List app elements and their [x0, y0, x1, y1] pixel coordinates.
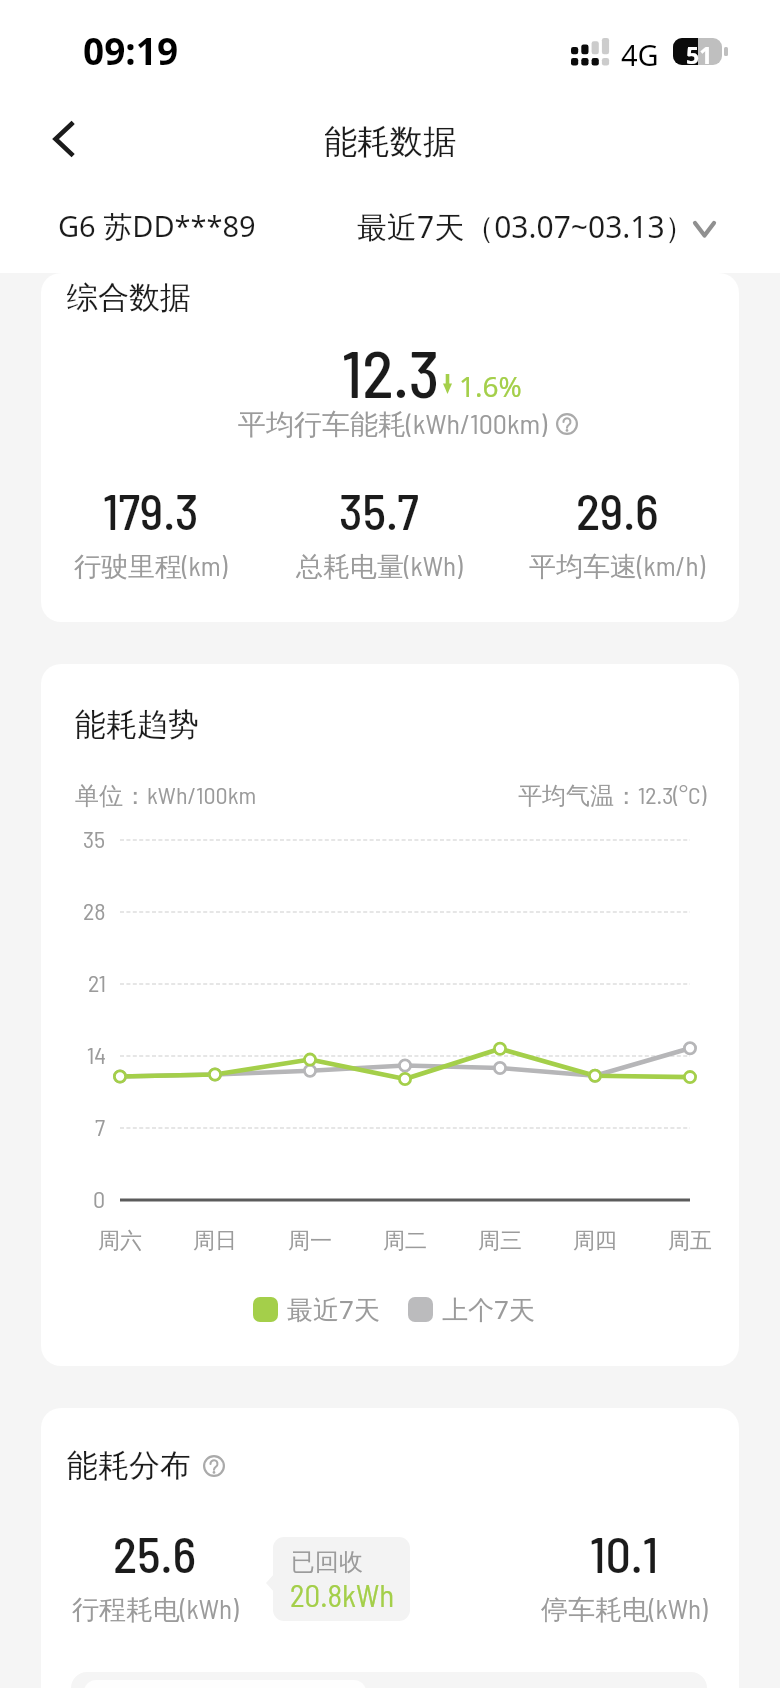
staticText: 29.6: [576, 480, 659, 540]
staticText: 4G: [621, 35, 659, 74]
staticText: 已回收: [291, 1547, 363, 1577]
staticText: 35: [83, 824, 106, 853]
staticText: 28: [83, 896, 106, 925]
staticText: 周一: [288, 1227, 332, 1255]
staticText: 能耗分布: [67, 1446, 191, 1485]
staticText: 12.3: [342, 333, 440, 411]
staticText: 平均车速(km/h): [529, 549, 706, 584]
staticText: 179.3: [103, 480, 199, 540]
button[interactable]: 25.6: [41, 1523, 275, 1627]
staticText: 10.1: [590, 1523, 659, 1583]
button[interactable]: Back: [30, 106, 96, 172]
staticText: 行程耗电(kWh): [72, 1592, 239, 1627]
button[interactable]: G6 苏DD***89: [58, 206, 256, 246]
button[interactable]: 最近7天（03.07~03.13）: [352, 194, 722, 250]
staticText: 周六: [98, 1227, 142, 1255]
button[interactable]: Help: [203, 1455, 225, 1477]
staticText: 14: [87, 1040, 106, 1069]
staticText: 25.6: [113, 1523, 197, 1583]
staticText: 总耗电量(kWh): [296, 549, 463, 584]
button[interactable]: 35.7: [259, 480, 499, 584]
staticText: 20.8kWh: [290, 1576, 395, 1613]
staticText: 单位：kWh/100km: [75, 780, 257, 811]
button[interactable]: 179.3: [41, 480, 271, 584]
staticText: 最近7天（03.07~03.13）: [357, 206, 695, 247]
staticText: 7: [95, 1112, 106, 1141]
staticText: 平均行车能耗(kWh/100km): [238, 406, 547, 442]
staticText: 平均气温：12.3(°C): [518, 780, 707, 811]
staticText: 51: [686, 39, 713, 70]
staticText: 最近7天: [287, 1291, 380, 1327]
staticText: 周二: [383, 1227, 427, 1255]
staticText: 周日: [193, 1227, 237, 1255]
staticText: 0: [93, 1184, 106, 1213]
staticText: 周三: [478, 1227, 522, 1255]
staticText: 综合数据: [67, 278, 191, 317]
button[interactable]: Help: [556, 413, 578, 435]
staticText: 停车耗电(kWh): [541, 1592, 708, 1627]
button[interactable]: 10.1: [504, 1523, 739, 1627]
staticText: 行驶里程(km): [74, 549, 228, 584]
staticText: 周五: [668, 1227, 712, 1255]
staticText: 能耗数据: [324, 121, 456, 163]
staticText: 35.7: [339, 480, 419, 540]
staticText: 21: [88, 968, 106, 997]
staticText: 09:19: [83, 25, 179, 75]
staticText: 1.6%: [459, 367, 522, 405]
staticText: 周四: [573, 1227, 617, 1255]
staticText: 上个7天: [442, 1291, 535, 1327]
staticText: 能耗趋势: [75, 705, 199, 744]
button[interactable]: 29.6: [497, 480, 737, 584]
